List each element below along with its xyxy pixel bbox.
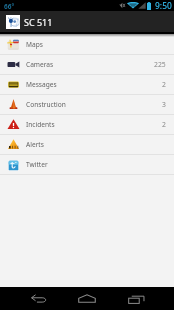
button[interactable]: Construction	[0, 95, 174, 114]
button[interactable]: Twitter	[0, 155, 174, 174]
staticText: 3	[162, 100, 166, 109]
button[interactable]: Recent apps	[126, 287, 146, 310]
staticText: Maps	[26, 40, 43, 49]
staticText: 9:50	[155, 0, 172, 11]
button[interactable]: Maps	[0, 35, 174, 54]
staticText: Cameras	[26, 60, 54, 69]
button[interactable]: Incidents	[0, 115, 174, 134]
staticText: Incidents	[26, 120, 55, 129]
button[interactable]: Alerts	[0, 135, 174, 154]
button[interactable]: Cameras	[0, 55, 174, 74]
staticText: 66°	[4, 2, 15, 11]
button[interactable]: SC 511	[0, 11, 174, 34]
button[interactable]: Back	[29, 287, 49, 310]
staticText: 225	[154, 60, 166, 69]
staticText: Messages	[26, 80, 57, 89]
staticText: 2	[162, 80, 166, 89]
button[interactable]: Messages	[0, 75, 174, 94]
staticText: Construction	[26, 100, 66, 109]
staticText: Alerts	[26, 140, 44, 149]
button[interactable]: Home	[77, 287, 97, 310]
staticText: SC 511	[24, 16, 53, 28]
staticText: 2	[162, 120, 166, 129]
staticText: Twitter	[26, 160, 48, 169]
